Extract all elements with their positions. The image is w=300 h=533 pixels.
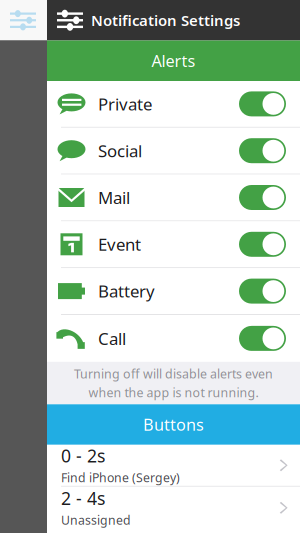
button[interactable]: Battery: [47, 268, 300, 315]
staticText: Mail: [98, 186, 130, 209]
button[interactable]: 2 - 4s: [47, 487, 300, 529]
button[interactable]: Settings: [0, 0, 47, 40]
staticText: when the app is not running.: [88, 384, 258, 401]
staticText: Unassigned: [61, 512, 131, 528]
staticText: Turning off will disable alerts even: [74, 365, 273, 382]
button[interactable]: Toggle: [239, 326, 286, 351]
button[interactable]: Event: [47, 221, 300, 268]
button[interactable]: Toggle: [239, 232, 286, 257]
button[interactable]: Menu: [47, 0, 91, 40]
staticText: Buttons: [143, 413, 204, 436]
button[interactable]: 0 - 2s: [47, 445, 300, 487]
staticText: 2 - 4s: [61, 486, 105, 510]
button[interactable]: Toggle: [239, 279, 286, 304]
staticText: Battery: [98, 280, 155, 303]
staticText: Alerts: [151, 50, 195, 72]
button[interactable]: Toggle: [239, 185, 286, 210]
staticText: Private: [98, 92, 152, 115]
staticText: Event: [98, 233, 141, 256]
button[interactable]: Private: [47, 81, 300, 128]
staticText: Social: [98, 139, 142, 162]
staticText: Find iPhone (Sergey): [61, 469, 180, 486]
button[interactable]: Social: [47, 128, 300, 175]
staticText: Notification Settings: [91, 10, 240, 30]
button[interactable]: Toggle: [239, 91, 286, 116]
button[interactable]: Call: [47, 315, 300, 362]
staticText: 0 - 2s: [61, 444, 105, 468]
button[interactable]: Toggle: [239, 138, 286, 163]
staticText: Call: [98, 327, 126, 350]
button[interactable]: Mail: [47, 175, 300, 221]
